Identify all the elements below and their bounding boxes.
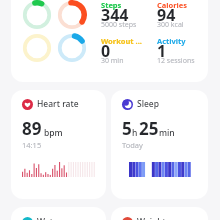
staticText: h [132, 127, 138, 139]
staticText: 300 kcal [157, 20, 184, 30]
staticText: Water [37, 216, 62, 220]
staticText: 12 sessions [157, 56, 195, 66]
staticText: Workout ... [101, 36, 142, 46]
staticText: 14:15 [22, 140, 42, 150]
staticText: 344 [101, 4, 129, 26]
button[interactable] [11, 0, 208, 82]
staticText: 1 [157, 40, 167, 62]
staticText: Calories [157, 0, 188, 10]
staticText: Activity [157, 36, 186, 46]
staticText: bpm [44, 127, 63, 139]
staticText: 25 [139, 117, 159, 140]
staticText: 5000 steps [101, 20, 137, 30]
staticText: 5 [122, 117, 132, 140]
staticText: Steps [101, 0, 122, 10]
button[interactable]: Weight [111, 207, 208, 220]
button[interactable]: Sleep [111, 90, 208, 199]
staticText: Sleep [137, 98, 159, 110]
button[interactable]: Water [11, 207, 106, 220]
staticText: Heart rate [37, 98, 79, 110]
button[interactable]: Heart rate [11, 90, 106, 199]
staticText: 89 [22, 117, 42, 140]
staticText: Weight [137, 216, 166, 220]
staticText: 30 min [101, 56, 124, 66]
staticText: 94 [157, 4, 176, 26]
staticText: Today [122, 140, 143, 150]
staticText: min [159, 127, 175, 139]
staticText: 0 [101, 40, 111, 62]
